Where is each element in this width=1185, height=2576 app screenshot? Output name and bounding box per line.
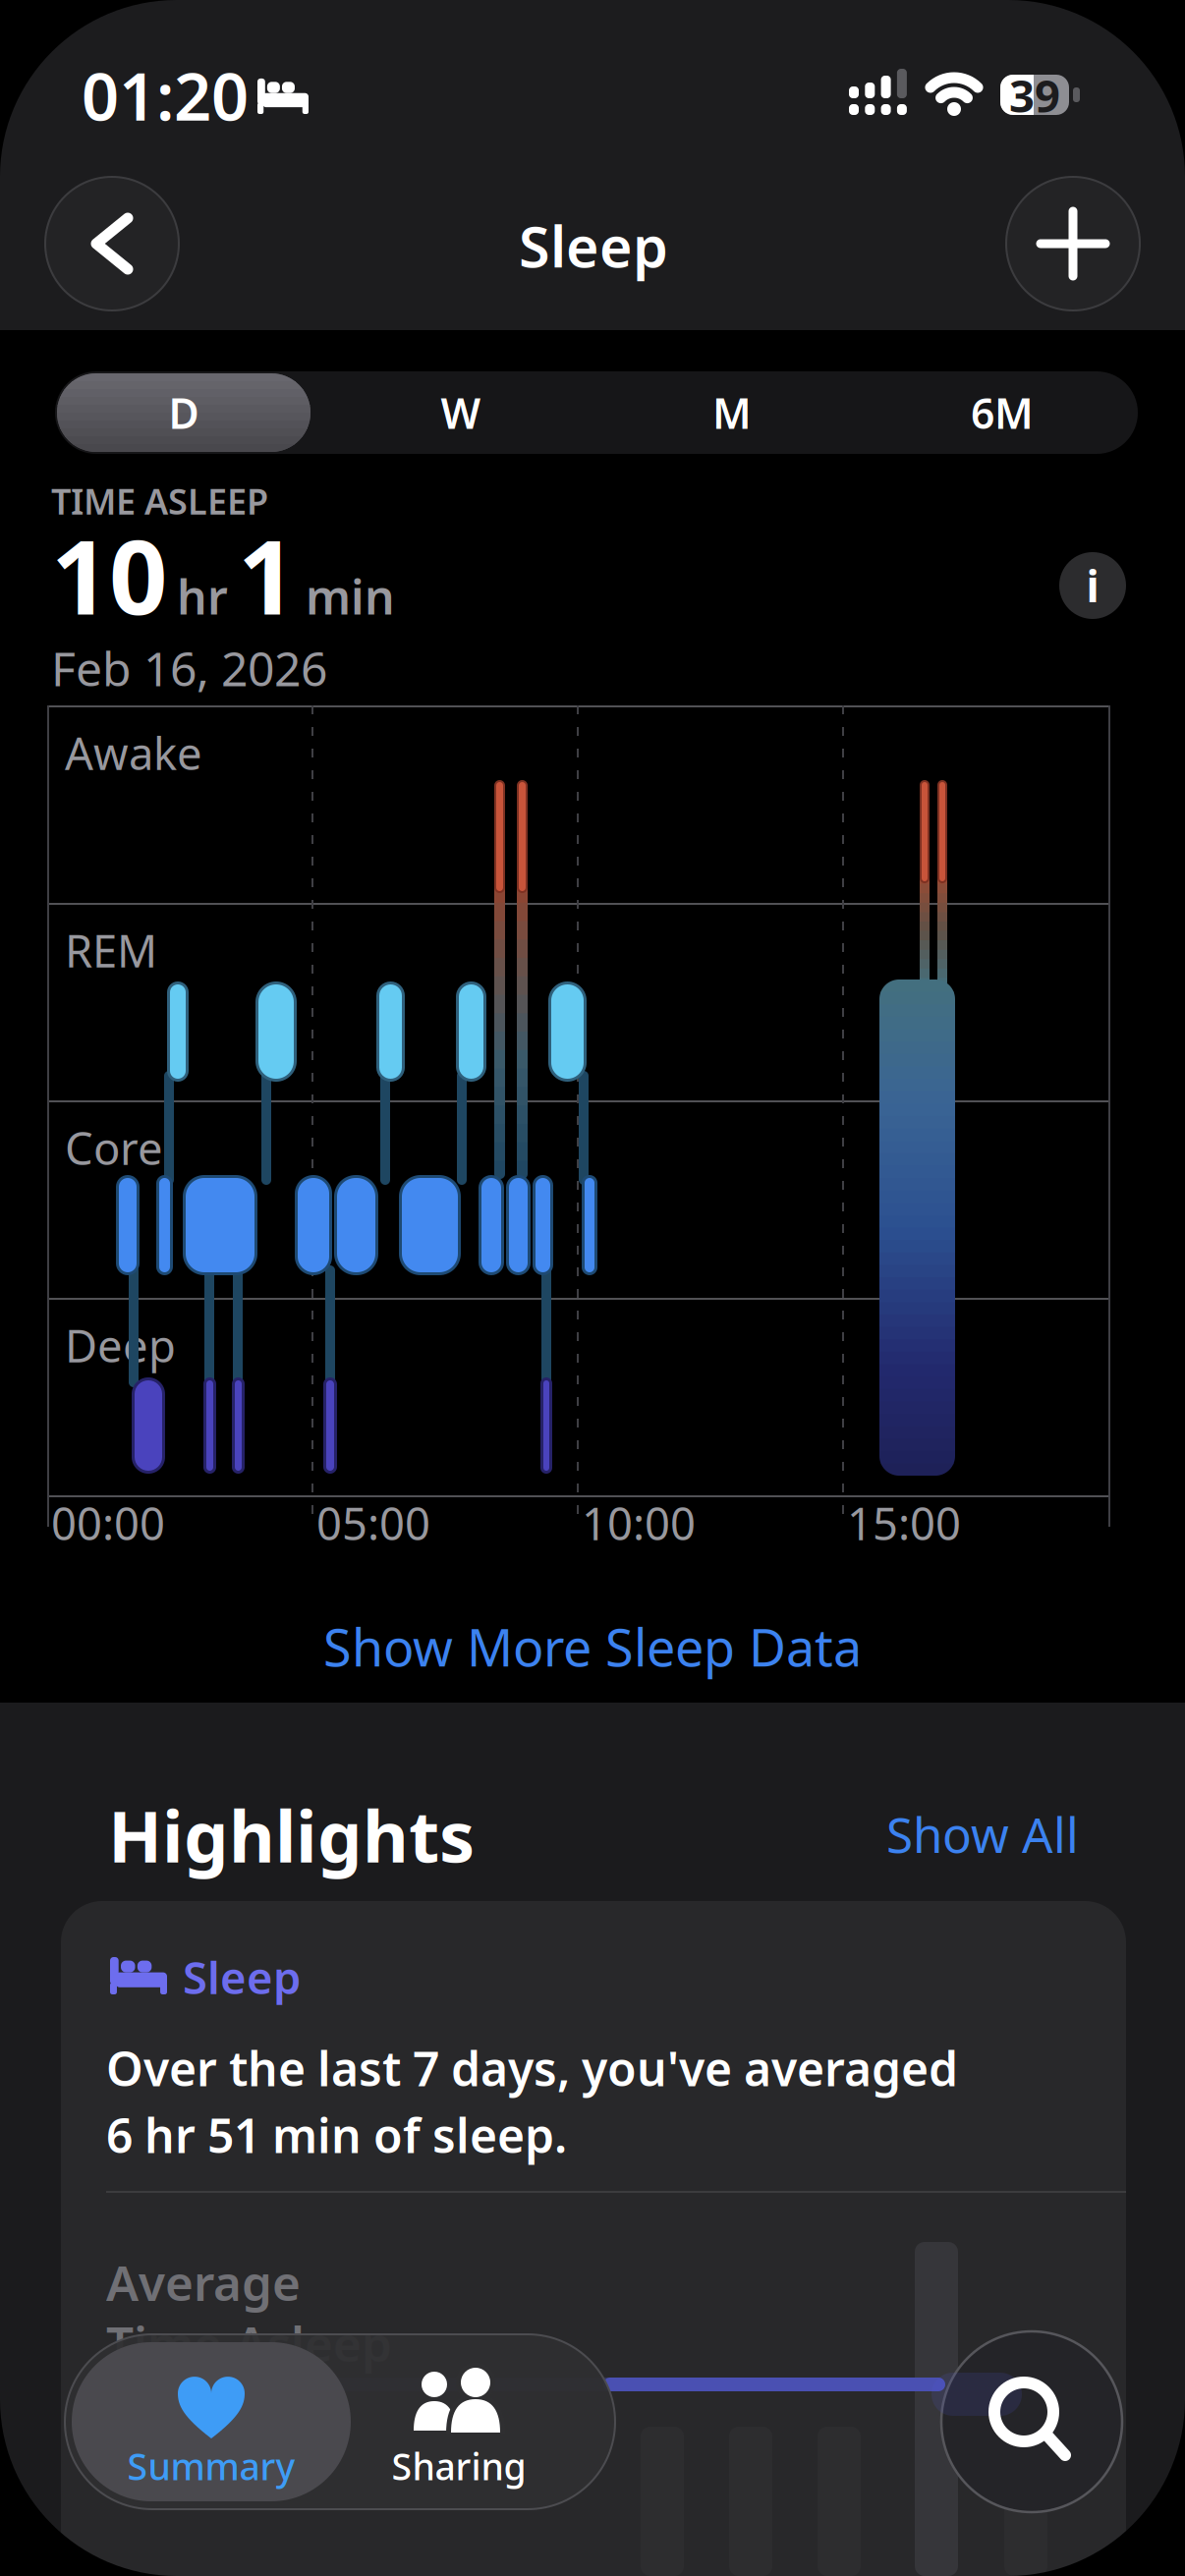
button[interactable]: M: [598, 373, 866, 452]
staticText: Show More Sleep Data: [323, 1613, 862, 1681]
staticText: 15:00: [847, 1493, 961, 1552]
staticText: Feb 16, 2026: [51, 637, 327, 699]
staticText: 10: [51, 507, 167, 643]
staticText: Show All: [886, 1802, 1079, 1866]
staticText: D: [169, 385, 199, 441]
staticText: 00:00: [51, 1493, 165, 1552]
staticText: M: [712, 385, 752, 441]
staticText: 10:00: [582, 1493, 696, 1552]
button[interactable]: W: [327, 373, 594, 452]
staticText: Deep: [65, 1316, 176, 1375]
staticText: TIME ASLEEP: [51, 477, 268, 524]
staticText: 6M: [971, 385, 1034, 441]
button[interactable]: Add Data: [1006, 177, 1140, 310]
button[interactable]: Sleep highlight: [61, 1901, 1126, 2576]
staticText: hr: [177, 565, 228, 627]
staticText: i: [1086, 557, 1099, 614]
button[interactable]: About Time Asleep: [1059, 552, 1126, 619]
staticText: Sharing: [392, 2442, 526, 2490]
staticText: Average: [106, 2250, 301, 2314]
staticText: Highlights: [108, 1788, 475, 1882]
staticText: Over the last 7 days, you've averaged: [106, 2037, 958, 2099]
button[interactable]: D: [57, 373, 310, 452]
button[interactable]: 6M: [869, 373, 1136, 452]
staticText: 05:00: [316, 1493, 430, 1552]
button[interactable]: Sharing: [336, 2342, 582, 2501]
staticText: min: [306, 565, 395, 627]
staticText: 1: [238, 507, 296, 643]
staticText: Sleep: [519, 208, 668, 283]
button[interactable]: Show All: [886, 1802, 1079, 1866]
button[interactable]: Back: [45, 177, 179, 310]
staticText: Sleep: [183, 1947, 301, 2006]
button[interactable]: Summary: [72, 2342, 351, 2501]
staticText: W: [441, 385, 481, 441]
staticText: Awake: [65, 723, 202, 782]
staticText: Summary: [127, 2442, 295, 2490]
staticText: 39: [1009, 66, 1060, 125]
staticText: Core: [65, 1118, 163, 1177]
button[interactable]: Search: [941, 2331, 1122, 2512]
staticText: 6 hr 51 min of sleep.: [106, 2104, 567, 2166]
staticText: REM: [65, 921, 157, 980]
staticText: 01:20: [82, 52, 249, 139]
button[interactable]: Show More Sleep Data: [101, 1607, 1084, 1686]
staticText: Time Asleep: [106, 2311, 392, 2375]
